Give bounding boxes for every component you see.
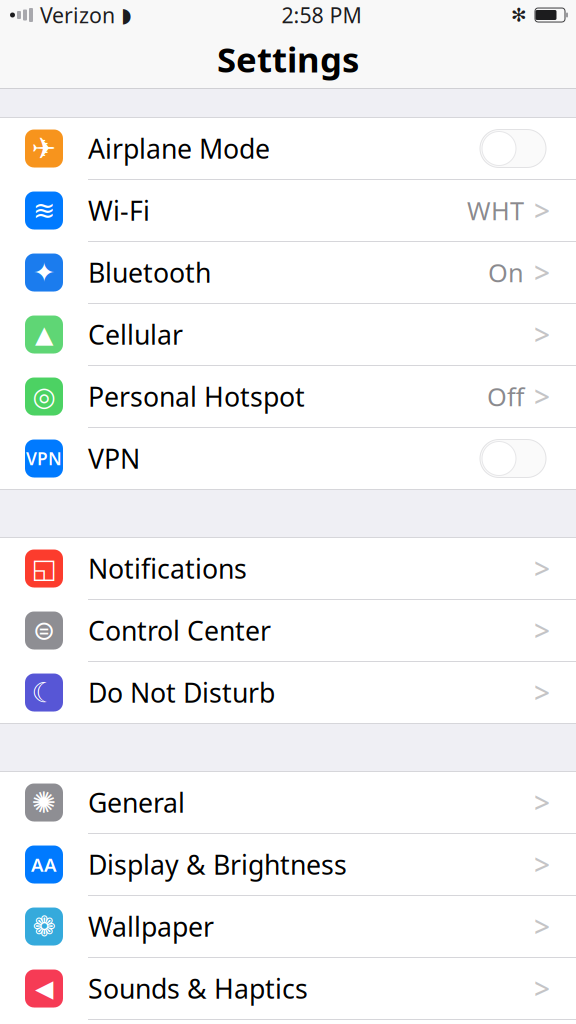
button[interactable]: ◱ — [0, 538, 576, 599]
button[interactable]: ❁ — [0, 896, 576, 957]
staticText: ⊜ — [33, 615, 55, 646]
staticText: ☾ — [31, 677, 56, 708]
staticText: WHT — [467, 194, 524, 227]
staticText: ❁ — [32, 911, 55, 942]
staticText: On — [488, 256, 524, 289]
staticText: ▲ — [35, 321, 53, 348]
staticText: Wi-Fi — [88, 193, 150, 228]
button[interactable]: ✦ — [0, 242, 576, 303]
staticText: Notifications — [88, 551, 247, 586]
staticText: > — [534, 550, 550, 587]
staticText: Control Center — [88, 613, 271, 648]
staticText: ◗ — [121, 4, 132, 26]
staticText: Personal Hotspot — [88, 379, 305, 414]
staticText: Cellular — [88, 317, 183, 352]
button[interactable]: ☾ — [0, 662, 576, 723]
staticText: Verizon — [40, 1, 115, 29]
staticText: Airplane Mode — [88, 131, 270, 166]
staticText: > — [534, 254, 550, 291]
staticText: Off — [487, 380, 524, 413]
staticText: > — [534, 784, 550, 821]
button[interactable]: ✈ — [0, 118, 576, 179]
staticText: AA — [31, 852, 57, 877]
staticText: > — [534, 846, 550, 883]
staticText: Do Not Disturb — [88, 675, 275, 710]
staticText: ◎ — [32, 381, 55, 412]
button[interactable]: AA — [0, 834, 576, 895]
staticText: > — [534, 378, 550, 415]
staticText: > — [534, 970, 550, 1007]
staticText: > — [534, 908, 550, 945]
staticText: > — [534, 316, 550, 353]
button[interactable]: ◎ — [0, 366, 576, 427]
staticText: Sounds & Haptics — [88, 971, 308, 1006]
staticText: ✈ — [31, 132, 56, 165]
staticText: > — [534, 674, 550, 711]
button[interactable]: ✺ — [0, 772, 576, 833]
button[interactable]: ≋ — [0, 180, 576, 241]
button[interactable]: ⊜ — [0, 600, 576, 661]
button[interactable]: VPN — [0, 428, 576, 489]
staticText: ✻ — [511, 4, 527, 26]
staticText: Wallpaper — [88, 909, 214, 944]
staticText: VPN — [88, 441, 140, 476]
staticText: > — [534, 192, 550, 229]
staticText: Settings — [217, 36, 359, 82]
staticText: VPN — [26, 447, 62, 470]
staticText: ◀ — [35, 975, 53, 1002]
button[interactable]: ▲ — [0, 304, 576, 365]
staticText: 2:58 PM — [281, 1, 361, 29]
staticText: ◱ — [31, 553, 56, 584]
staticText: Display & Brightness — [88, 847, 347, 882]
staticText: ✦ — [33, 257, 55, 288]
staticText: General — [88, 785, 185, 820]
staticText: Bluetooth — [88, 255, 211, 290]
staticText: > — [534, 612, 550, 649]
button[interactable]: ◀ — [0, 958, 576, 1019]
staticText: ✺ — [31, 786, 56, 819]
staticText: ≋ — [33, 195, 55, 226]
